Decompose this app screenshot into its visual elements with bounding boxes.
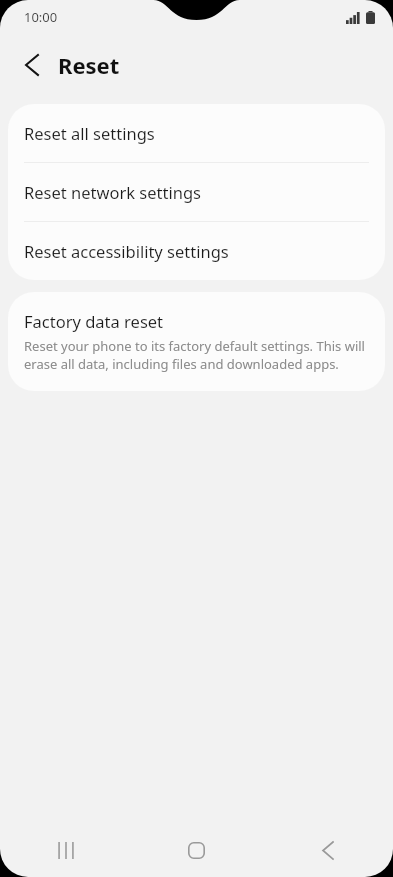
button[interactable]: Reset network settings: [8, 163, 385, 221]
button[interactable]: Reset accessibility settings: [8, 222, 385, 280]
staticText: Reset accessibility settings: [24, 240, 229, 262]
staticText: Factory data reset: [24, 310, 164, 332]
staticText: Reset: [58, 50, 120, 80]
staticText: Reset network settings: [24, 181, 201, 203]
staticText: Reset all settings: [24, 122, 155, 144]
button[interactable]: Back: [262, 823, 393, 877]
button[interactable]: Home: [131, 823, 262, 877]
staticText: Reset your phone to its factory default …: [24, 337, 369, 373]
button[interactable]: Factory data reset: [8, 292, 385, 391]
button[interactable]: Reset all settings: [8, 104, 385, 162]
button[interactable]: Back: [10, 43, 54, 87]
button[interactable]: Recents: [0, 823, 131, 877]
staticText: 10:00: [24, 8, 58, 26]
